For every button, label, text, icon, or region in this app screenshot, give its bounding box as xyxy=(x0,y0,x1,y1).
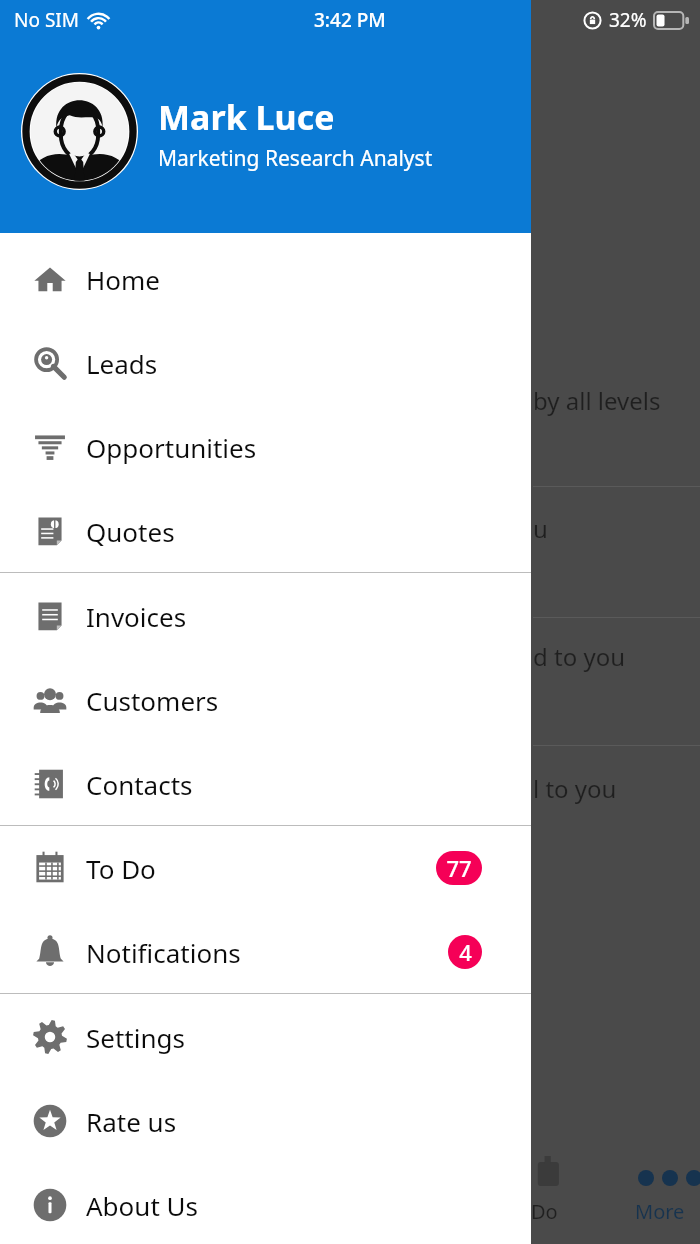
staticText: No SIM xyxy=(14,7,79,33)
button[interactable]: Contacts xyxy=(0,764,531,804)
button[interactable]: Leads xyxy=(0,343,531,383)
button[interactable]: To Do xyxy=(0,848,531,888)
staticText: Leads xyxy=(86,346,158,381)
staticText: l to you xyxy=(533,772,617,805)
staticText: To Do xyxy=(86,851,156,886)
staticText: u xyxy=(533,512,548,545)
staticText: Invoices xyxy=(86,599,187,634)
staticText: by all levels xyxy=(533,384,661,417)
staticText: Quotes xyxy=(86,514,175,549)
staticText: 3:42 PM xyxy=(314,7,386,33)
staticText: Customers xyxy=(86,683,219,718)
button[interactable]: Opportunities xyxy=(0,427,531,467)
staticText: d to you xyxy=(533,640,626,673)
staticText: Settings xyxy=(86,1020,185,1055)
staticText: Marketing Research Analyst xyxy=(158,144,433,173)
button[interactable]: Rate us xyxy=(0,1101,531,1141)
button[interactable]: Home xyxy=(0,259,531,299)
staticText: 4 xyxy=(459,937,472,967)
button[interactable]: Invoices xyxy=(0,596,531,636)
staticText: Home xyxy=(86,262,160,297)
button[interactable]: Notifications xyxy=(0,932,531,972)
staticText: More xyxy=(635,1198,685,1225)
button[interactable]: Customers xyxy=(0,680,531,720)
staticText: 32% xyxy=(609,7,647,33)
button[interactable]: Quotes xyxy=(0,511,531,551)
button[interactable]: About Us xyxy=(0,1185,531,1225)
staticText: Do xyxy=(531,1198,558,1225)
staticText: Notifications xyxy=(86,935,241,970)
staticText: Opportunities xyxy=(86,430,257,465)
staticText: 77 xyxy=(446,853,472,883)
staticText: About Us xyxy=(86,1188,199,1223)
staticText: Mark Luce xyxy=(158,94,335,140)
staticText: Contacts xyxy=(86,767,193,802)
staticText: Rate us xyxy=(86,1104,177,1139)
button[interactable]: Settings xyxy=(0,1017,531,1057)
